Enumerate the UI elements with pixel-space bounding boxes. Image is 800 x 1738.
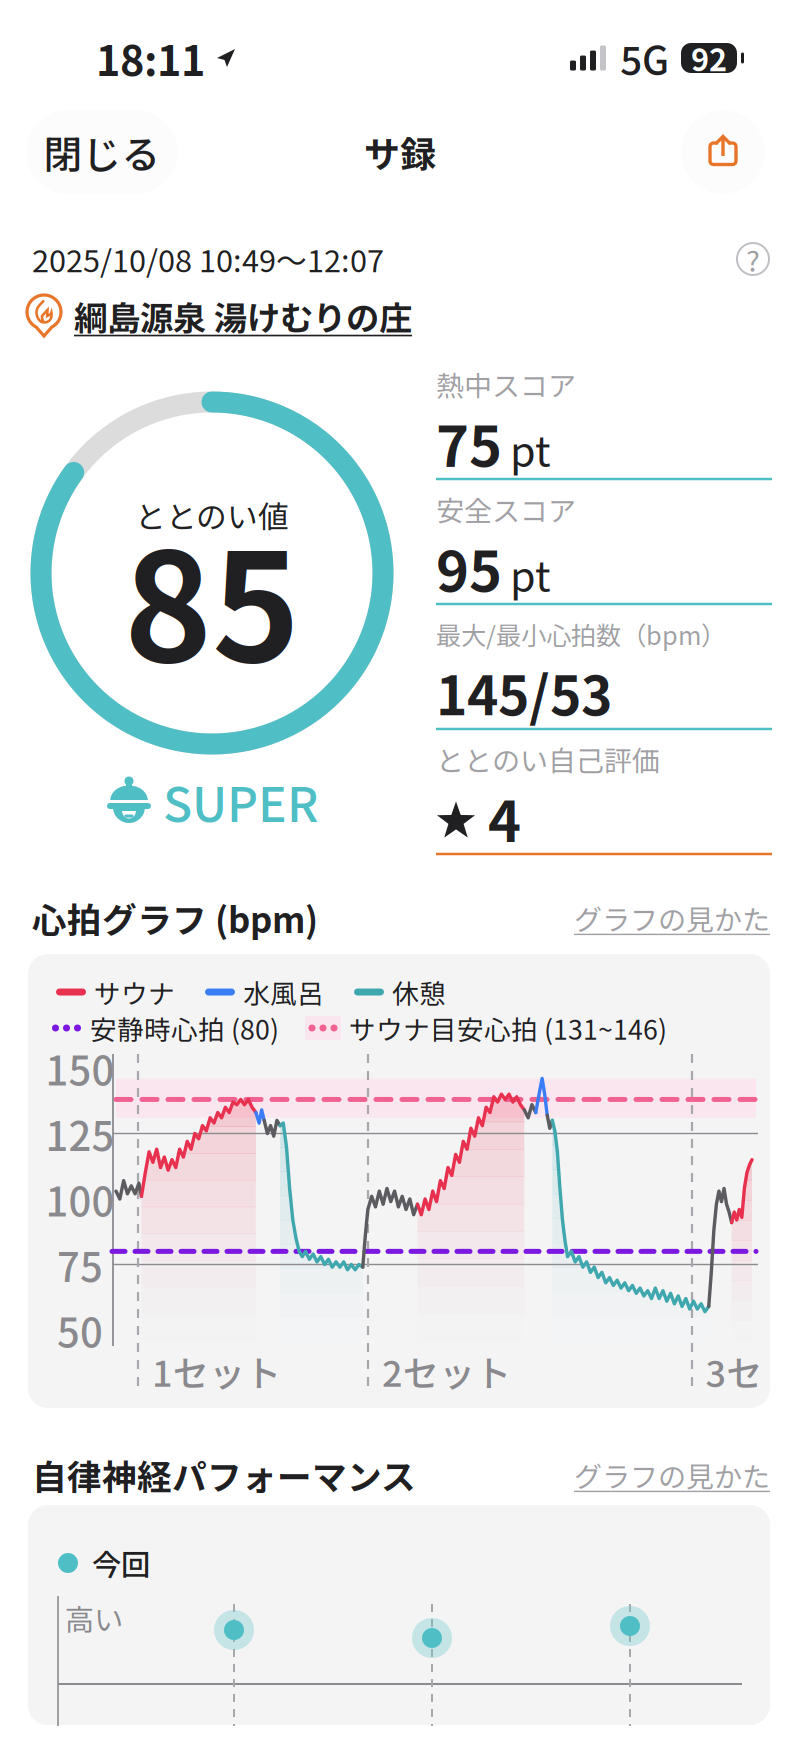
staticText: ととのい値 bbox=[135, 493, 289, 537]
staticText: ? bbox=[746, 238, 760, 280]
staticText: 2セット bbox=[382, 1345, 511, 1397]
staticText: 自律神経パフォーマンス bbox=[32, 1450, 416, 1500]
staticText: 5G bbox=[620, 30, 669, 86]
staticText: pt bbox=[510, 418, 551, 478]
staticText: 100 bbox=[45, 1170, 114, 1228]
staticText: サウナ目安心拍 (131~146) bbox=[349, 1009, 667, 1047]
staticText: 今回 bbox=[92, 1542, 150, 1584]
staticText: 95 bbox=[436, 526, 502, 608]
staticText: 高い bbox=[65, 1597, 123, 1639]
button[interactable]: Help bbox=[736, 242, 770, 276]
staticText: 水風呂 bbox=[243, 973, 324, 1011]
staticText: サウナ bbox=[94, 973, 175, 1011]
staticText: 50 bbox=[57, 1301, 103, 1359]
staticText: pt bbox=[510, 543, 551, 603]
staticText: 安全スコア bbox=[436, 489, 576, 529]
staticText: 最大/最小心拍数（bpm） bbox=[436, 616, 726, 652]
staticText: グラフの見かた bbox=[574, 898, 770, 938]
staticText: 75 bbox=[57, 1235, 103, 1293]
staticText: 92 bbox=[691, 36, 727, 80]
staticText: グラフの見かた bbox=[574, 1455, 770, 1495]
staticText: 145/53 bbox=[436, 653, 612, 731]
button[interactable]: 綱島源泉 湯けむりの庄 bbox=[74, 292, 412, 340]
staticText: 4 bbox=[488, 776, 521, 858]
staticText: 1セット bbox=[152, 1345, 281, 1397]
staticText: 125 bbox=[45, 1104, 114, 1162]
staticText: 3セ bbox=[705, 1345, 762, 1397]
staticText: 閉じる bbox=[43, 124, 160, 180]
staticText: 18:11 bbox=[96, 28, 205, 88]
staticText: サ録 bbox=[364, 126, 436, 178]
staticText: 150 bbox=[45, 1039, 114, 1097]
staticText: 熱中スコア bbox=[436, 364, 576, 404]
staticText: 75 bbox=[436, 401, 502, 483]
staticText: 2025/10/08 10:49〜12:07 bbox=[32, 237, 384, 281]
button[interactable]: グラフの見かた bbox=[574, 898, 770, 938]
staticText: 綱島源泉 湯けむりの庄 bbox=[74, 292, 412, 340]
staticText: SUPER bbox=[163, 766, 318, 836]
button[interactable]: グラフの見かた bbox=[574, 1455, 770, 1495]
staticText: 安静時心拍 (80) bbox=[90, 1009, 279, 1047]
button[interactable]: 閉じる bbox=[26, 110, 178, 194]
staticText: ととのい自己評価 bbox=[436, 739, 660, 779]
staticText: 休憩 bbox=[392, 973, 446, 1011]
staticText: 心拍グラフ (bpm) bbox=[32, 893, 318, 943]
button[interactable]: Share bbox=[681, 110, 765, 194]
staticText: 85 bbox=[124, 489, 300, 705]
